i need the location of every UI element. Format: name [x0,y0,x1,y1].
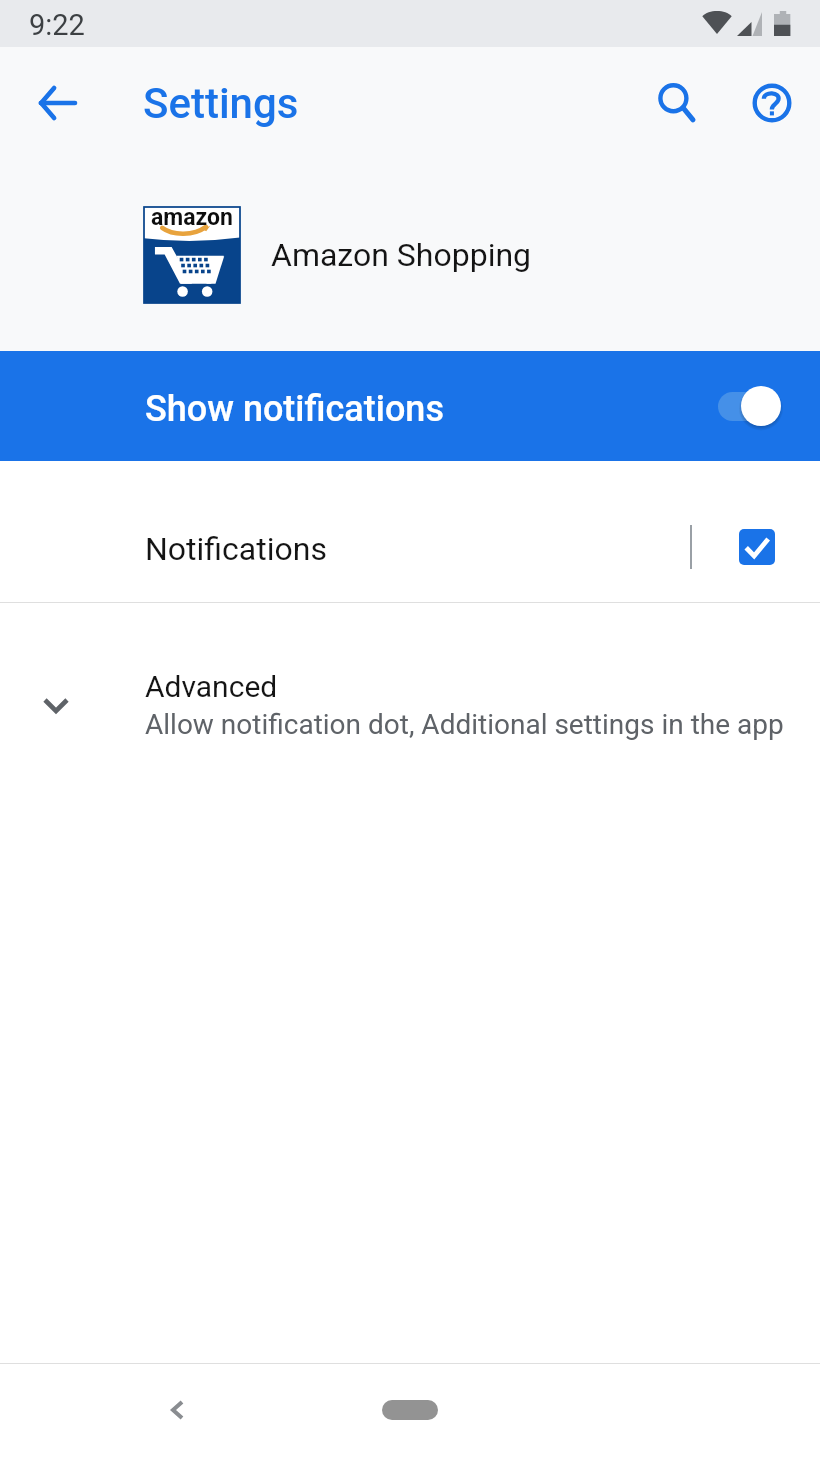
button[interactable]: Expand advanced settings [0,603,820,763]
button[interactable]: Help [730,61,814,145]
other: Expand advanced settings [20,669,92,741]
button[interactable]: Show notifications [0,351,820,461]
button[interactable]: Notifications enabled [739,529,775,565]
staticText: Notifications [145,530,327,568]
staticText: Amazon Shopping [271,236,532,274]
staticText: 9:22 [29,8,85,42]
staticText: Show notifications [145,388,444,430]
staticText: Allow notification dot, Additional setti… [145,708,784,741]
button[interactable]: Back [147,1380,207,1440]
button[interactable]: Home [382,1400,438,1420]
staticText: Advanced [145,669,278,704]
button[interactable]: Back [15,61,99,145]
staticText: amazon [151,204,233,231]
staticText: Settings [143,79,299,128]
button[interactable]: Search [635,61,719,145]
button[interactable]: Notifications [0,461,820,602]
